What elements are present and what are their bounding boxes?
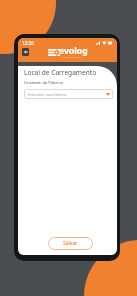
button[interactable]: Back xyxy=(22,48,29,56)
staticText: Salvar xyxy=(63,240,78,247)
button[interactable]: Salvar xyxy=(48,237,93,250)
staticText: Local de Carregamento xyxy=(24,68,97,77)
staticText: 12:30 xyxy=(22,40,34,46)
staticText: Selecione uma fábrica xyxy=(28,92,67,97)
button[interactable]: Selecione uma fábrica xyxy=(24,89,113,99)
staticText: SISTEMA DE GESTÃO xyxy=(61,56,83,59)
staticText: Unidade da Fábrica xyxy=(24,79,63,85)
staticText: evolog xyxy=(59,45,88,57)
